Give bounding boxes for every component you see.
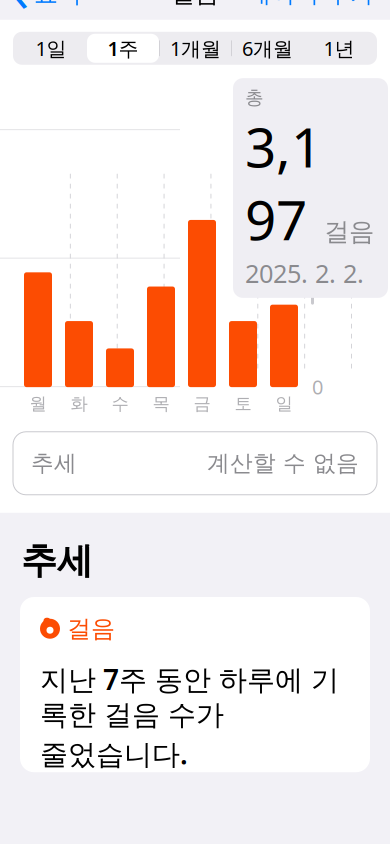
staticText: 목: [152, 393, 169, 414]
staticText: 줄었습니다.: [40, 735, 188, 772]
staticText: 6개월: [242, 35, 293, 62]
staticText: 걸음: [67, 614, 115, 643]
button[interactable]: 6개월: [231, 32, 303, 65]
staticText: 일: [275, 393, 292, 414]
staticText: 추세: [21, 539, 93, 583]
staticText: 화: [70, 393, 87, 414]
staticText: 1년: [323, 35, 354, 62]
staticText: 1주: [107, 35, 138, 62]
staticText: 계산할 수 없음: [207, 449, 359, 477]
staticText: 추세: [31, 449, 77, 477]
staticText: 5,000: [312, 245, 361, 271]
staticText: 지난 7주 동안 하루에 기록한 걸음 수가: [40, 660, 339, 732]
staticText: 데이터 추가: [247, 0, 374, 8]
staticText: ‹: [14, 0, 29, 24]
staticText: 1개월: [170, 35, 221, 62]
button[interactable]: 데이터 추가: [247, 0, 390, 14]
button[interactable]: 추세: [13, 432, 377, 495]
staticText: 3,197: [245, 110, 322, 255]
staticText: 2025. 2. 2.: [245, 256, 364, 290]
button[interactable]: 1개월: [159, 32, 231, 65]
button[interactable]: ‹: [0, 0, 82, 30]
staticText: 요약: [34, 0, 82, 8]
staticText: 금: [193, 393, 210, 414]
staticText: 1일: [35, 35, 66, 62]
button[interactable]: 1년: [303, 32, 375, 65]
button[interactable]: 1일: [15, 32, 87, 65]
staticText: 월: [29, 393, 46, 414]
staticText: 수: [111, 393, 128, 414]
staticText: 0: [312, 373, 323, 400]
staticText: 걸음: [324, 216, 374, 247]
button[interactable]: 1주: [87, 32, 159, 65]
staticText: 토: [234, 393, 251, 414]
staticText: 총: [245, 86, 264, 109]
staticText: 걸음: [171, 0, 219, 8]
